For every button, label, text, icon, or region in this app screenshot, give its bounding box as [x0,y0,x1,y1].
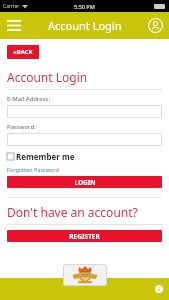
staticText: Forgotten Password [7,166,59,173]
button[interactable] [7,133,162,146]
button[interactable]: REGISTER [7,230,162,242]
button[interactable]: Home logo [63,264,107,286]
staticText: Account Login [7,69,88,85]
staticText: Carrier [3,3,20,10]
button[interactable]: Account [142,12,169,39]
staticText: E-Mail Address: [7,95,51,103]
staticText: «BACK [13,48,33,56]
button[interactable]: LOGIN [7,176,162,188]
staticText: REGISTER [69,232,100,241]
button[interactable]: Info [149,279,169,299]
button[interactable]: Remember me [7,151,75,162]
button[interactable] [7,105,162,118]
button[interactable]: «BACK [7,45,39,59]
staticText: Password: [7,123,36,131]
staticText: Account Login [48,18,122,33]
staticText: Remember me [16,151,75,162]
staticText: LOGIN [74,178,96,187]
staticText: 5:50 PM [74,3,95,10]
staticText: Don't have an account? [7,204,138,220]
button[interactable]: Menu [0,12,27,39]
button[interactable]: Forgotten Password [7,166,59,173]
